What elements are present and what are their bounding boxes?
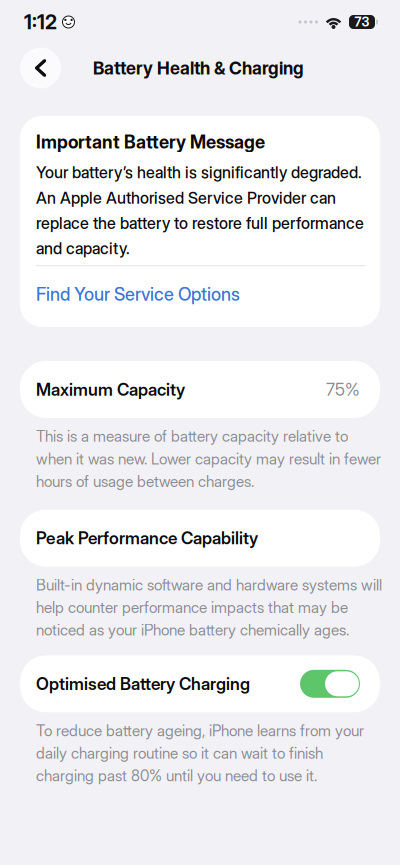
staticText: Your battery’s health is significantly d… — [36, 163, 364, 258]
staticText: Peak Performance Capability — [36, 528, 258, 548]
staticText: 1:12 — [24, 10, 57, 34]
staticText: Maximum Capacity — [36, 379, 185, 400]
button[interactable]: Back — [20, 47, 61, 88]
staticText: This is a measure of battery capacity re… — [36, 427, 381, 491]
staticText: 75% — [326, 379, 360, 400]
staticText: Built-in dynamic software and hardware s… — [36, 576, 382, 639]
staticText: Important Battery Message — [36, 131, 265, 153]
button[interactable]: Optimised Battery Charging — [300, 670, 360, 698]
staticText: 73 — [354, 14, 369, 30]
button[interactable]: Find Your Service Options — [36, 283, 376, 305]
staticText: Optimised Battery Charging — [36, 673, 250, 694]
staticText: Battery Health & Charging — [93, 57, 304, 79]
staticText: Find Your Service Options — [36, 283, 240, 305]
staticText: To reduce battery ageing, iPhone learns … — [36, 721, 364, 785]
